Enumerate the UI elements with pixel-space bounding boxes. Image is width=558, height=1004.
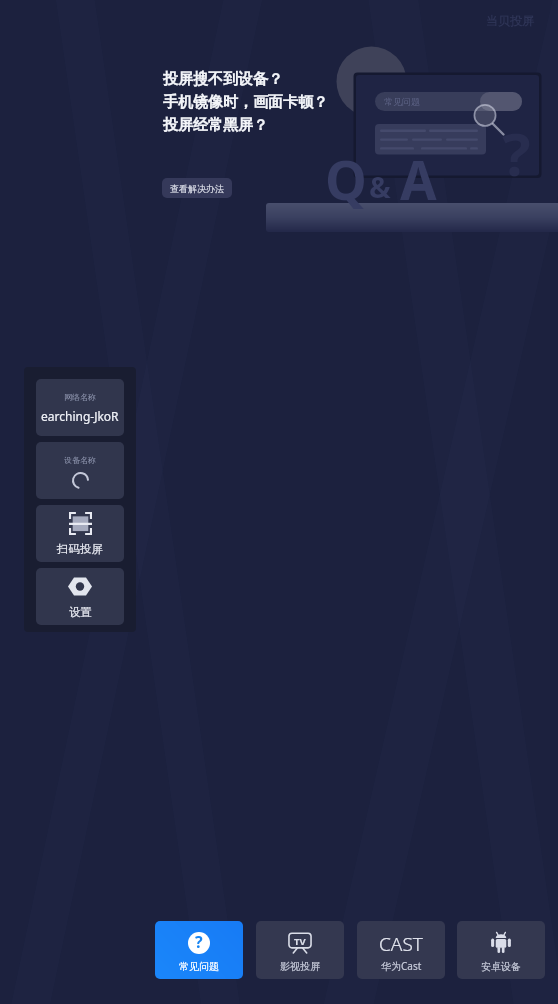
button[interactable]: TV — [256, 921, 344, 979]
staticText: 查看解决办法 — [170, 183, 224, 194]
button[interactable]: 设置 — [36, 568, 124, 625]
staticText: 设备名称 — [64, 455, 96, 465]
staticText: earching-JkoR — [41, 408, 119, 424]
button[interactable]: 扫码投屏 — [36, 505, 124, 562]
staticText: ? — [195, 931, 203, 953]
staticText: 投屏经常黑屏？ — [163, 116, 268, 135]
staticText: ? — [502, 112, 531, 194]
staticText: 常见问题 — [384, 96, 420, 107]
staticText: 设置 — [69, 605, 92, 619]
staticText: 当贝投屏 — [486, 13, 534, 28]
staticText: 常见问题 — [179, 960, 219, 973]
button[interactable]: 查看解决办法 — [162, 178, 232, 198]
staticText: 网络名称 — [64, 392, 96, 402]
button[interactable]: 网络名称 — [36, 379, 124, 436]
button[interactable]: CAST — [357, 921, 445, 979]
staticText: 安卓设备 — [481, 960, 521, 973]
staticText: A — [400, 143, 437, 215]
button[interactable]: 设备名称 — [36, 442, 124, 499]
staticText: 影视投屏 — [280, 960, 320, 973]
staticText: 扫码投屏 — [57, 542, 103, 556]
button[interactable]: ? — [155, 921, 243, 979]
staticText: & — [369, 167, 391, 206]
staticText: CAST — [379, 931, 423, 954]
button[interactable]: 安卓设备 — [457, 921, 545, 979]
staticText: Q — [325, 143, 367, 215]
staticText: TV — [294, 935, 306, 948]
staticText: 手机镜像时，画面卡顿？ — [163, 93, 328, 112]
staticText: 投屏搜不到设备？ — [163, 70, 283, 89]
staticText: 华为Cast — [381, 959, 422, 973]
